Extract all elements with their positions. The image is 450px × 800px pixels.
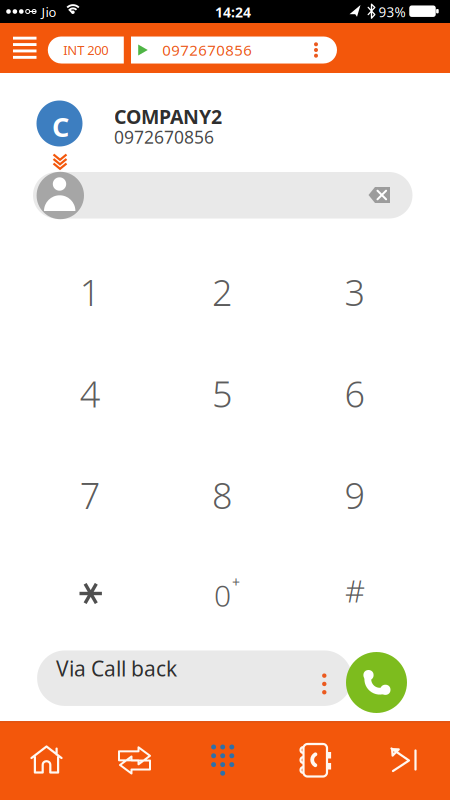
staticText: 7 <box>80 470 101 519</box>
staticText: INT 200 <box>63 41 108 59</box>
staticText: 6 <box>344 369 365 418</box>
button[interactable]: Menu <box>9 33 40 64</box>
button[interactable]: 3 <box>295 248 415 336</box>
staticText: 0 <box>214 575 231 615</box>
button[interactable]: 8 <box>162 451 282 539</box>
staticText: 93% <box>378 3 405 21</box>
staticText: 1 <box>80 267 101 316</box>
button[interactable]: 0972670856 <box>131 36 337 63</box>
staticText: 3 <box>344 267 365 316</box>
button[interactable]: Delete <box>366 184 392 205</box>
button[interactable]: 6 <box>295 349 415 437</box>
staticText: 9 <box>344 470 365 519</box>
staticText: 8 <box>212 470 233 519</box>
staticText: 0972670856 <box>162 40 252 60</box>
button[interactable]: 0 <box>162 551 282 639</box>
staticText: # <box>345 569 365 612</box>
staticText: C <box>52 108 69 145</box>
staticText: Via Call back <box>56 654 177 683</box>
button[interactable]: 5 <box>162 349 282 437</box>
button[interactable]: Keypad <box>180 721 270 800</box>
staticText: COMPANY2 <box>114 103 222 130</box>
staticText: 4 <box>80 369 101 418</box>
button[interactable]: INT 200 <box>48 36 124 63</box>
button[interactable]: Call <box>346 652 407 713</box>
staticText: 5 <box>212 369 233 418</box>
staticText: 2 <box>212 267 233 316</box>
staticText: Jio <box>41 3 56 21</box>
button[interactable]: Transfer <box>90 721 180 800</box>
button[interactable]: 2 <box>162 248 282 336</box>
staticText: + <box>232 572 240 592</box>
button[interactable]: # <box>295 546 415 634</box>
button[interactable]: 9 <box>295 451 415 539</box>
button[interactable]: * <box>31 549 151 637</box>
button[interactable]: 1 <box>30 248 150 336</box>
button[interactable]: Via Call back <box>37 650 352 706</box>
button[interactable]: Show rates <box>50 152 70 172</box>
button[interactable]: 7 <box>30 451 150 539</box>
button[interactable]: Home <box>0 721 90 800</box>
staticText: 0972670856 <box>114 125 214 149</box>
button[interactable]: Call out <box>360 721 450 800</box>
staticText: 14:24 <box>215 2 251 22</box>
button[interactable]: 4 <box>30 349 150 437</box>
button[interactable]: Contacts <box>270 721 360 800</box>
